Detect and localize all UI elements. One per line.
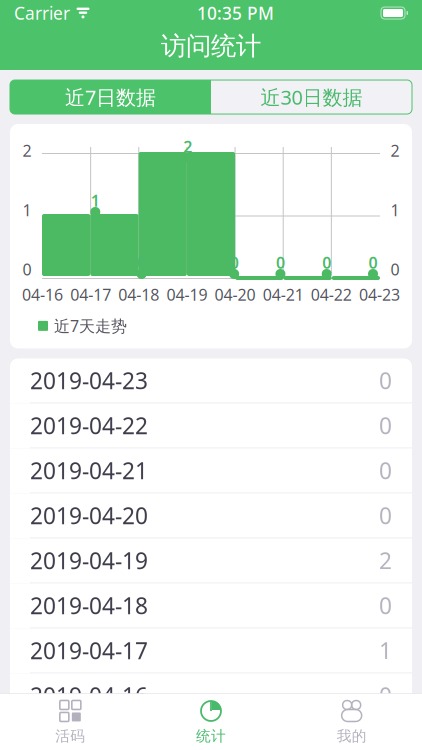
staticText: 04-21 [263, 284, 304, 305]
staticText: 0 [137, 252, 146, 273]
staticText: 04-23 [359, 284, 400, 305]
staticText: 2019-04-19 [30, 545, 148, 575]
staticText: 2019-04-16 [30, 680, 148, 710]
staticText: 04-20 [215, 284, 256, 305]
button[interactable]: 访问统计 [0, 24, 422, 68]
staticText: 0 [22, 259, 31, 280]
button[interactable]: 近30日数据 [211, 80, 412, 114]
staticText: 0 [379, 365, 392, 395]
staticText: 1 [390, 199, 399, 221]
button[interactable]: 活码 [0, 694, 141, 750]
staticText: 2 [379, 545, 392, 575]
staticText: 2019-04-20 [30, 500, 148, 530]
staticText: 访问统计 [161, 30, 261, 61]
button[interactable]: 2019-04-20 [10, 493, 412, 538]
staticText: 2 [22, 140, 31, 161]
staticText: 2019-04-23 [30, 365, 148, 395]
staticText: 活码 [55, 727, 85, 745]
staticText: 04-19 [166, 284, 207, 305]
staticText: 近7天走势 [54, 315, 127, 336]
button[interactable]: 统计 [141, 694, 281, 750]
staticText: 0 [379, 410, 392, 440]
staticText: 0 [390, 259, 399, 280]
staticText: 2019-04-21 [30, 455, 148, 485]
staticText: 统计 [196, 727, 226, 745]
staticText: 2019-04-17 [30, 635, 148, 665]
staticText: 04-16 [22, 284, 63, 305]
staticText: 0 [230, 252, 239, 273]
button[interactable]: 2019-04-22 [10, 403, 412, 448]
staticText: 0 [379, 680, 392, 710]
button[interactable]: 近7日数据 [10, 80, 211, 114]
button[interactable]: 2019-04-21 [10, 448, 412, 493]
staticText: 2 [183, 136, 192, 157]
staticText: 04-22 [311, 284, 352, 305]
staticText: 0 [276, 252, 285, 273]
staticText: 1 [379, 635, 392, 665]
staticText: 0 [379, 590, 392, 620]
button[interactable]: 2019-04-18 [10, 583, 412, 628]
button[interactable]: 2019-04-19 [10, 538, 412, 583]
button[interactable]: 2019-04-16 [10, 673, 412, 717]
staticText: 0 [379, 455, 392, 485]
button[interactable]: 我的 [281, 694, 422, 750]
staticText: 1 [91, 190, 100, 211]
staticText: 2019-04-18 [30, 590, 148, 620]
button[interactable]: 2019-04-17 [10, 628, 412, 673]
staticText: 我的 [337, 727, 367, 745]
button[interactable]: 2019-04-23 [10, 358, 412, 403]
staticText: 近30日数据 [260, 84, 362, 110]
staticText: 10:35 PM [197, 1, 274, 24]
staticText: 04-18 [118, 284, 159, 305]
staticText: 2019-04-22 [30, 410, 148, 440]
staticText: 近7日数据 [65, 84, 156, 110]
staticText: Carrier [14, 1, 70, 24]
staticText: 1 [22, 199, 31, 221]
staticText: 0 [322, 252, 331, 273]
staticText: 0 [379, 500, 392, 530]
staticText: 2 [390, 140, 399, 161]
staticText: 04-17 [70, 284, 111, 305]
staticText: 0 [368, 252, 377, 273]
